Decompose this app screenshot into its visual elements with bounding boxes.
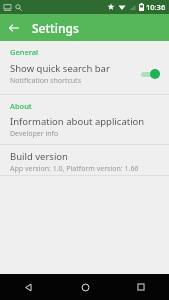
button[interactable]: Show quick search bar	[0, 59, 169, 89]
staticText: Show quick search bar	[10, 62, 110, 75]
button[interactable]: Build version	[0, 149, 169, 175]
staticText: App version: 1.0, Platform version: 1.66	[10, 164, 139, 174]
button[interactable]: Home	[57, 274, 113, 300]
button[interactable]: Navigate up	[0, 14, 27, 41]
staticText: Developer info	[10, 129, 59, 139]
staticText: 10:36	[146, 2, 166, 12]
staticText: Notification shortcuts	[10, 76, 82, 86]
button[interactable]: Information about application	[0, 113, 169, 140]
staticText: About	[10, 101, 32, 111]
button[interactable]: Back	[0, 274, 57, 300]
staticText: Information about application	[10, 115, 145, 128]
staticText: General	[10, 47, 39, 57]
staticText: Build version	[10, 150, 68, 163]
staticText: Settings	[32, 20, 79, 36]
button[interactable]: Recent apps	[113, 274, 169, 300]
